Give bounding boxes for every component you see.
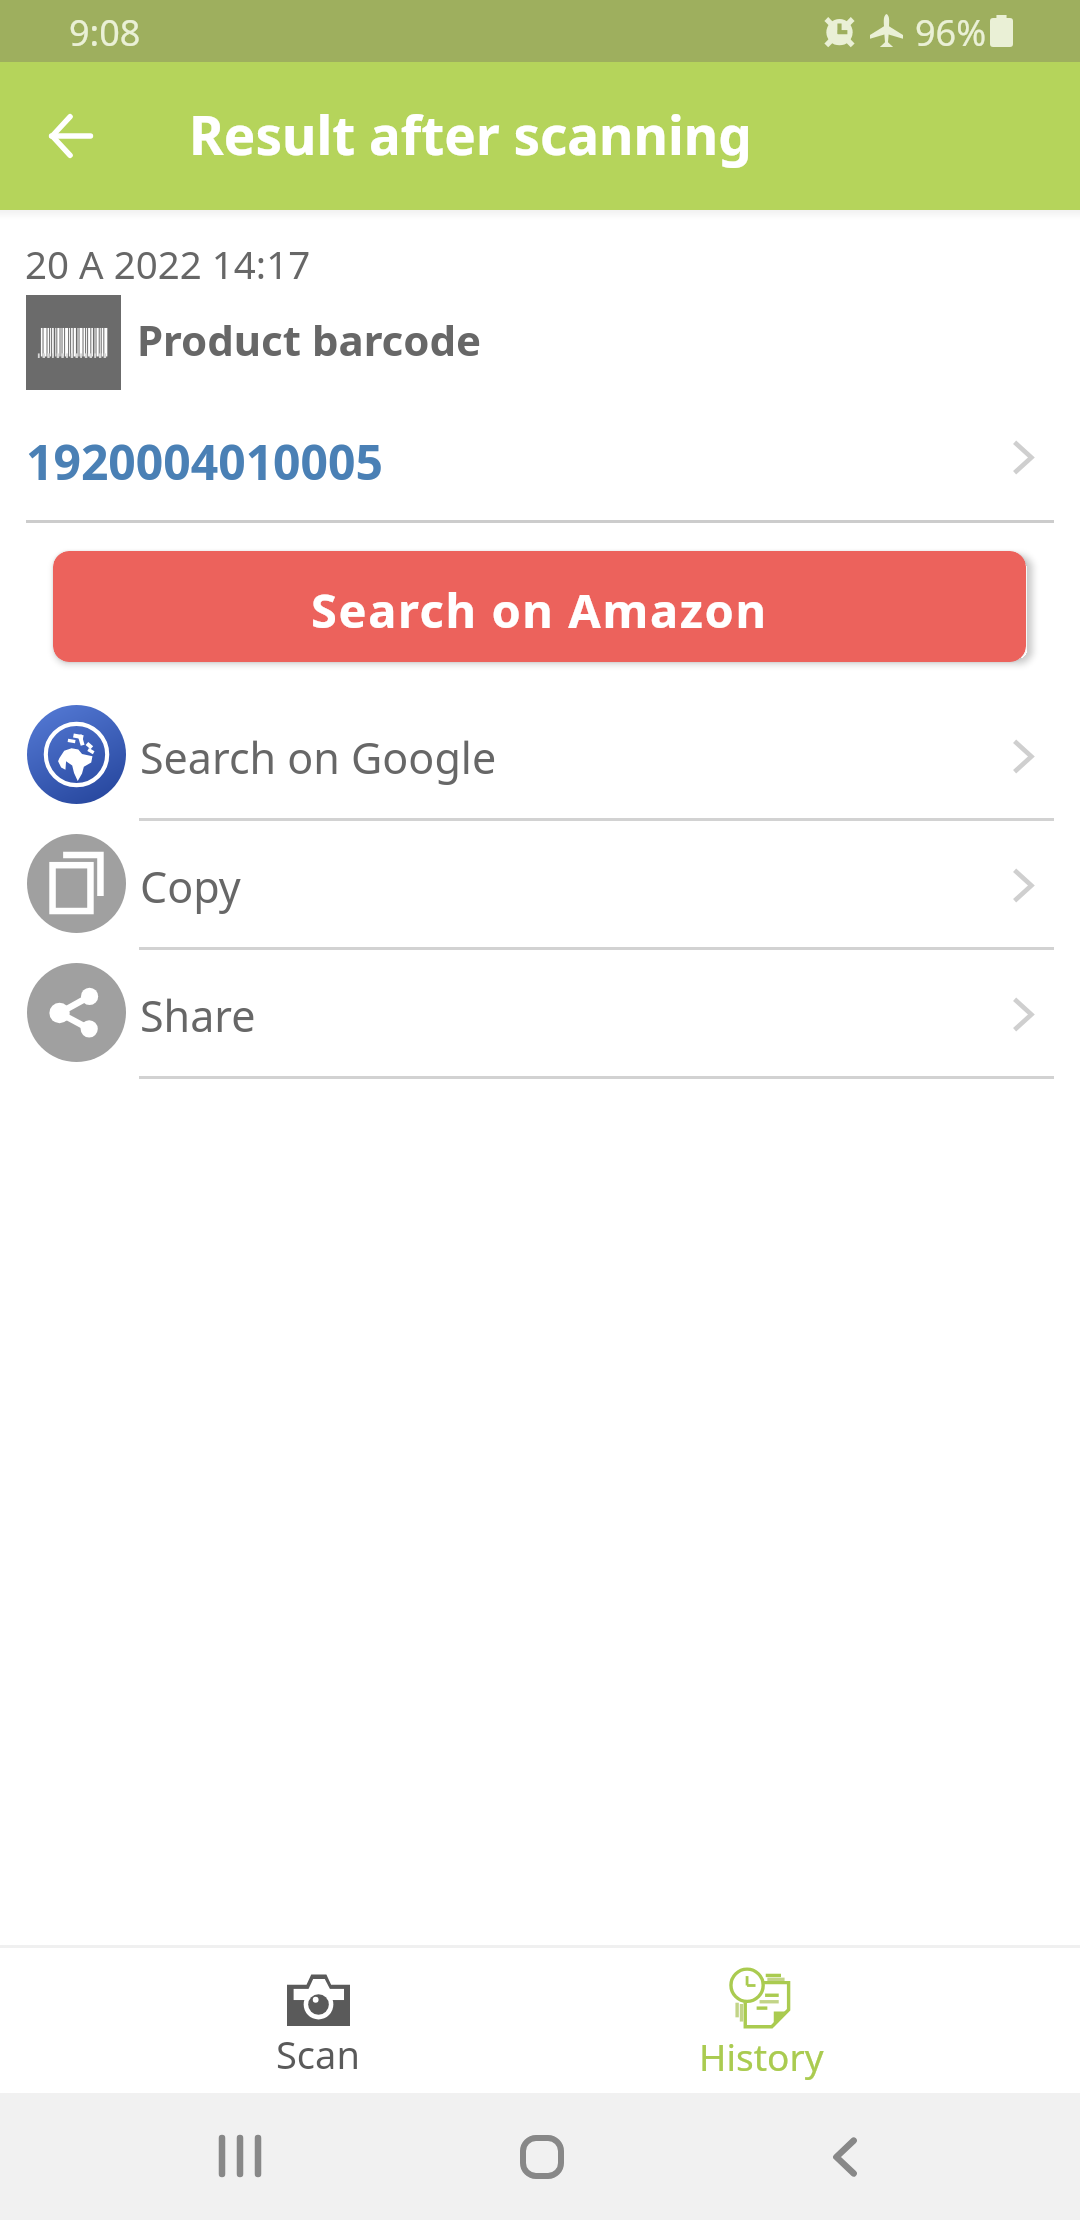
staticText: Search on Google <box>140 728 497 787</box>
staticText: 9:08 <box>69 8 141 57</box>
button[interactable]: 1920004010005 <box>0 405 1080 510</box>
button[interactable]: Share <box>0 950 1080 1079</box>
staticText: Scan <box>276 2028 360 2080</box>
button[interactable]: Search on Google <box>0 692 1080 821</box>
staticText: History <box>699 2031 824 2081</box>
staticText: Share <box>140 986 256 1045</box>
staticText: 20 A 2022 14:17 <box>25 238 311 290</box>
button[interactable]: Back <box>26 91 115 180</box>
button[interactable]: Recents <box>139 2093 339 2220</box>
staticText: 1920004010005 <box>26 429 383 494</box>
button[interactable]: Search on Amazon <box>53 551 1026 662</box>
button[interactable]: Home <box>442 2093 642 2220</box>
staticText: Search on Amazon <box>311 578 768 642</box>
button[interactable]: Scan <box>88 1948 548 2093</box>
staticText: Result after scanning <box>189 98 752 170</box>
staticText: Product barcode <box>137 311 482 368</box>
button[interactable]: Back <box>744 2093 944 2220</box>
button[interactable]: Copy <box>0 821 1080 950</box>
staticText: Copy <box>140 857 241 916</box>
button[interactable]: History <box>531 1948 991 2093</box>
staticText: 96% <box>915 8 987 57</box>
